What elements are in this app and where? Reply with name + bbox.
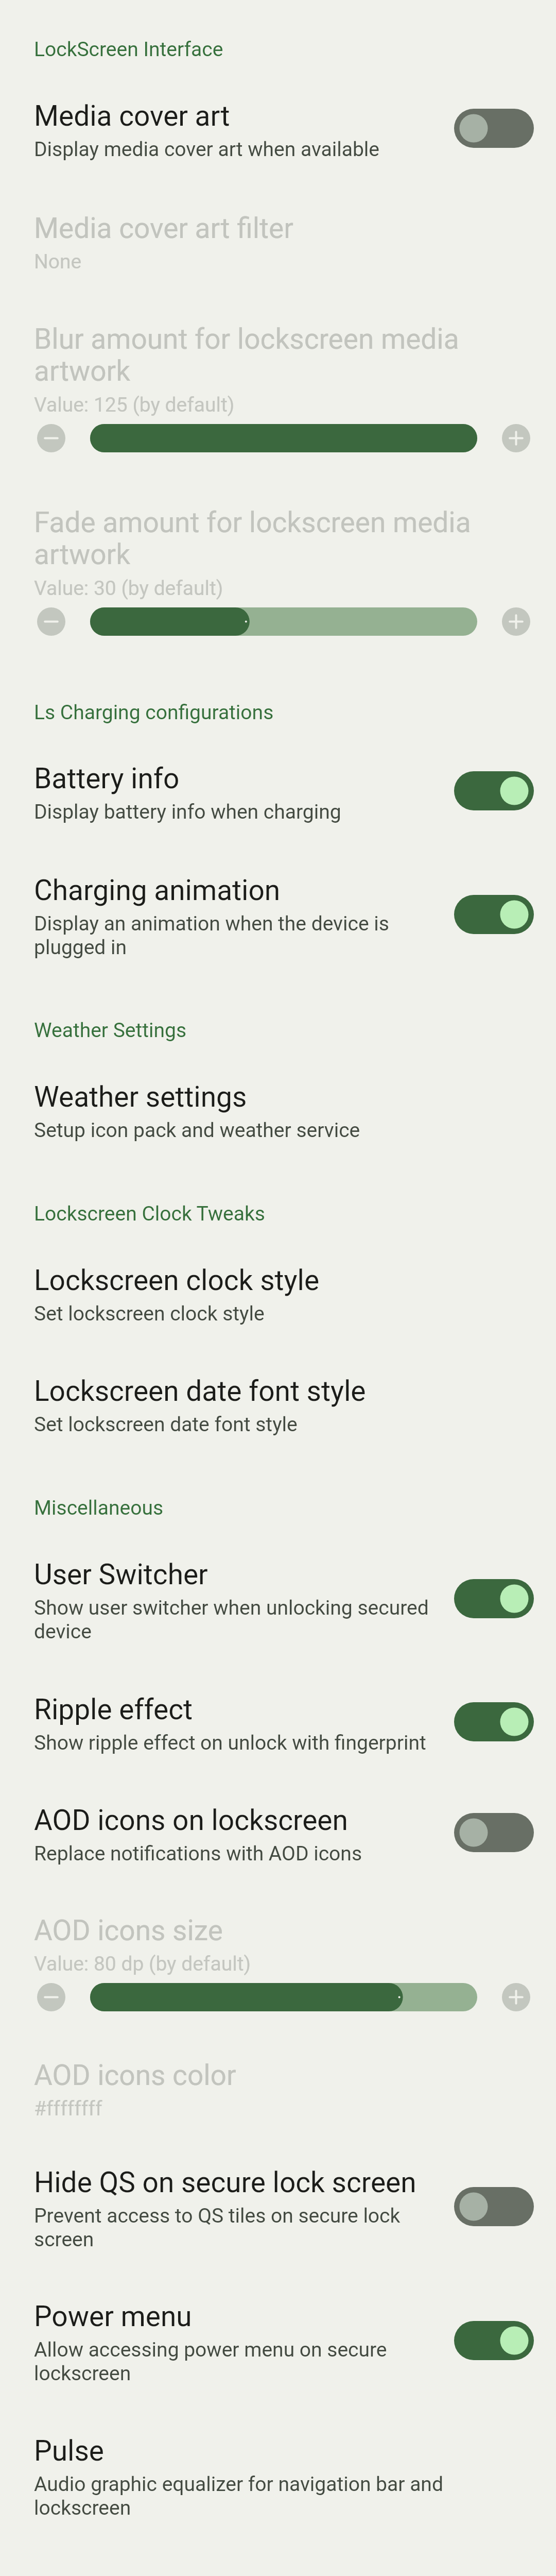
staticText: Weather settings [34, 1080, 449, 1113]
button[interactable]: Charging animation [0, 874, 556, 959]
button[interactable]: Decrease value [37, 1983, 65, 2011]
staticText: Media cover art filter [34, 212, 449, 245]
staticText: Weather Settings [34, 1019, 556, 1042]
button[interactable]: Pulse [0, 2434, 556, 2520]
staticText: Allow accessing power menu on secure loc… [34, 2338, 449, 2385]
button[interactable]: Media cover art [0, 99, 556, 161]
staticText: Set lockscreen clock style [34, 1302, 449, 1326]
button[interactable]: Hide QS on secure lock screen [0, 2166, 556, 2251]
staticText: Setup icon pack and weather service [34, 1118, 449, 1142]
button[interactable]: Increase value [502, 424, 530, 452]
staticText: Display media cover art when available [34, 138, 449, 161]
staticText: Value: 30 (by default) [34, 577, 520, 600]
button[interactable]: AOD icons size [0, 1914, 556, 2011]
staticText: Pulse [34, 2434, 449, 2467]
button[interactable]: AOD icons on lockscreen [0, 1804, 556, 1866]
button[interactable]: Increase value [502, 1983, 530, 2011]
staticText: LockScreen Interface [34, 38, 556, 61]
staticText: Hide QS on secure lock screen [34, 2166, 449, 2199]
button[interactable]: Increase value [502, 607, 530, 636]
button[interactable]: Media cover art filter [0, 212, 556, 274]
button[interactable]: Lockscreen date font style [0, 1375, 556, 1436]
button[interactable]: Power menu [0, 2300, 556, 2385]
button[interactable]: Fade amount for lockscreen media artwork [0, 506, 556, 636]
staticText: Set lockscreen date font style [34, 1413, 449, 1436]
staticText: #ffffffff [34, 2097, 449, 2121]
button[interactable]: Lockscreen clock style [0, 1264, 556, 1326]
staticText: Ls Charging configurations [34, 701, 556, 724]
button[interactable]: Battery info [0, 762, 556, 824]
staticText: Audio graphic equalizer for navigation b… [34, 2472, 449, 2520]
staticText: Value: 125 (by default) [34, 393, 520, 417]
staticText: Media cover art [34, 99, 449, 132]
staticText: AOD icons color [34, 2059, 449, 2092]
staticText: AOD icons size [34, 1914, 520, 1947]
button[interactable]: User Switcher [0, 1558, 556, 1643]
staticText: Lockscreen clock style [34, 1264, 449, 1297]
button[interactable]: Ripple effect [0, 1693, 556, 1755]
staticText: Battery info [34, 762, 449, 795]
staticText: Lockscreen Clock Tweaks [34, 1202, 556, 1226]
button[interactable]: Weather settings [0, 1080, 556, 1142]
staticText: Fade amount for lockscreen media artwork [34, 506, 520, 571]
staticText: Lockscreen date font style [34, 1375, 449, 1408]
button[interactable]: Decrease value [37, 424, 65, 452]
button[interactable]: Decrease value [37, 607, 65, 636]
staticText: Charging animation [34, 874, 449, 907]
button[interactable]: AOD icons color [0, 2059, 556, 2121]
button[interactable]: Blur amount for lockscreen media artwork [0, 323, 556, 452]
staticText: Power menu [34, 2300, 449, 2333]
staticText: Prevent access to QS tiles on secure loc… [34, 2204, 449, 2251]
staticText: Display battery info when charging [34, 800, 449, 824]
staticText: None [34, 250, 449, 274]
staticText: Show ripple effect on unlock with finger… [34, 1731, 449, 1755]
staticText: Ripple effect [34, 1693, 449, 1726]
staticText: Display an animation when the device is … [34, 912, 449, 959]
staticText: Blur amount for lockscreen media artwork [34, 323, 520, 388]
staticText: User Switcher [34, 1558, 449, 1591]
staticText: Replace notifications with AOD icons [34, 1842, 449, 1866]
staticText: AOD icons on lockscreen [34, 1804, 449, 1837]
staticText: Value: 80 dp (by default) [34, 1952, 520, 1976]
staticText: Show user switcher when unlocking secure… [34, 1596, 449, 1643]
staticText: Miscellaneous [34, 1496, 556, 1520]
